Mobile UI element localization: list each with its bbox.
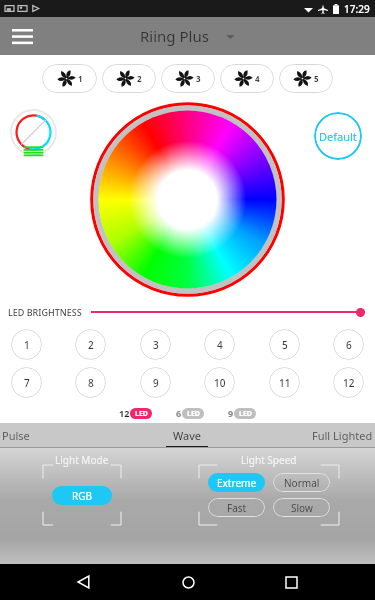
button[interactable]: Fast	[208, 498, 265, 517]
staticText: LED	[239, 409, 252, 419]
staticText: Slow	[291, 501, 313, 515]
button[interactable]: Recent apps	[271, 564, 311, 600]
button[interactable]: 10	[204, 367, 235, 398]
button[interactable]: 9	[140, 367, 171, 398]
staticText: 7	[24, 376, 30, 390]
staticText: Full Lighted	[312, 428, 373, 443]
button[interactable]: 5	[279, 64, 333, 93]
staticText: 9	[153, 376, 159, 390]
button[interactable]: 1	[11, 329, 42, 360]
staticText: Light Mode	[55, 453, 109, 467]
staticText: 12	[119, 407, 130, 419]
staticText: Extreme	[217, 476, 257, 490]
staticText: Riing Plus	[140, 26, 209, 46]
staticText: 6	[176, 407, 182, 419]
button[interactable]: Full Lighted	[249, 423, 373, 448]
button[interactable]: 9	[228, 407, 256, 419]
staticText: LED	[135, 409, 148, 419]
staticText: LED BRIGHTNESS	[8, 306, 82, 318]
staticText: 2	[88, 338, 94, 352]
button[interactable]: 8	[75, 367, 106, 398]
button[interactable]: 12	[119, 407, 152, 419]
button[interactable]: Default	[314, 112, 362, 160]
staticText: 1	[24, 338, 30, 352]
button[interactable]: 12	[333, 367, 364, 398]
button[interactable]: RGB	[52, 486, 112, 505]
button[interactable]: Wave	[125, 423, 249, 448]
button[interactable]: Normal	[273, 473, 330, 492]
button[interactable]: Home	[168, 564, 208, 600]
staticText: 3	[153, 338, 159, 352]
button[interactable]: 2	[102, 64, 156, 93]
button[interactable]: Color wheel picker	[90, 102, 285, 297]
button[interactable]: 11	[269, 367, 300, 398]
staticText: 11	[279, 376, 291, 390]
staticText: RGB	[72, 489, 92, 503]
button[interactable]: Extreme	[208, 473, 265, 492]
staticText: Fast	[227, 501, 247, 515]
staticText: Pulse	[2, 428, 30, 443]
staticText: Wave	[173, 428, 201, 443]
staticText: 10	[214, 376, 226, 390]
staticText: 12	[343, 376, 355, 390]
button[interactable]: Slow	[273, 498, 330, 517]
staticText: 9	[228, 407, 234, 419]
button[interactable]: Lighting preset bulb	[7, 109, 60, 162]
staticText: Light Speed	[241, 453, 297, 467]
button[interactable]: 4	[220, 64, 274, 93]
staticText: 17:29	[344, 2, 370, 16]
staticText: 4	[255, 73, 260, 84]
button[interactable]: 6	[176, 407, 204, 419]
button[interactable]: 4	[204, 329, 235, 360]
staticText: 5	[282, 338, 288, 352]
button[interactable]: 1	[42, 64, 97, 93]
staticText: 5	[314, 73, 319, 84]
staticText: 8	[88, 376, 94, 390]
staticText: 6	[346, 338, 352, 352]
staticText: 4	[217, 338, 223, 352]
button[interactable]: Open navigation menu	[5, 19, 39, 53]
button[interactable]: 5	[269, 329, 300, 360]
button[interactable]: Riing Plus	[140, 26, 235, 46]
staticText: Normal	[284, 476, 320, 490]
staticText: Default	[319, 129, 357, 144]
staticText: 1	[78, 73, 83, 84]
staticText: 2	[137, 73, 142, 84]
staticText: LED	[187, 409, 200, 419]
button[interactable]: 6	[333, 329, 364, 360]
button[interactable]: LED brightness slider	[91, 301, 365, 323]
button[interactable]: 2	[75, 329, 106, 360]
button[interactable]: 3	[140, 329, 171, 360]
button[interactable]: Back	[64, 564, 104, 600]
staticText: 3	[196, 73, 201, 84]
button[interactable]: Pulse	[2, 423, 125, 448]
button[interactable]: 3	[161, 64, 215, 93]
button[interactable]: 7	[11, 367, 42, 398]
